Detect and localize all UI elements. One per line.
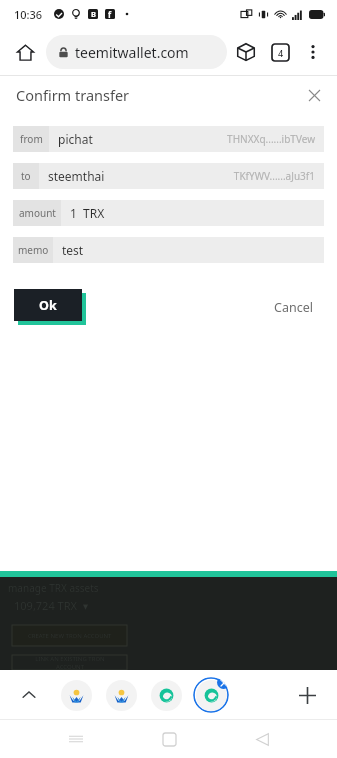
button[interactable]: Close — [299, 80, 329, 110]
button[interactable]: Home — [151, 721, 187, 757]
button[interactable]: Recent apps — [58, 721, 94, 757]
staticText: 1 TRX — [70, 205, 105, 221]
button[interactable]: from — [13, 126, 324, 152]
button[interactable]: Home — [8, 35, 42, 69]
staticText: from — [20, 132, 43, 146]
button[interactable]: LINK AN EXISTING TRON ACCOUNT — [12, 655, 127, 670]
staticText: TKfYWV......aJu3f1 — [233, 169, 315, 183]
button[interactable]: CREATE NEW TRON ACCOUNT — [12, 625, 127, 646]
staticText: pichat — [58, 131, 93, 147]
button[interactable]: Expand — [10, 676, 48, 714]
staticText: to — [21, 169, 31, 183]
button[interactable]: 3D view — [229, 35, 263, 69]
button[interactable]: More options — [297, 36, 329, 68]
button[interactable]: Current tab, close — [193, 677, 229, 713]
button[interactable]: New tab — [287, 675, 327, 715]
button[interactable]: Tab 2 — [103, 677, 139, 713]
staticText: CREATE NEW TRON ACCOUNT — [28, 632, 112, 640]
staticText: memo — [18, 243, 49, 257]
staticText: LINK AN EXISTING TRON ACCOUNT — [35, 655, 105, 670]
staticText: teemitwallet.com — [75, 43, 189, 62]
button[interactable]: to — [13, 163, 324, 189]
staticText: test — [62, 242, 84, 258]
staticText: manage TRX assets — [8, 581, 99, 595]
button[interactable]: teemitwallet.com — [46, 35, 227, 69]
button[interactable]: Cancel — [268, 295, 319, 320]
button[interactable]: Tabs: 4 — [263, 35, 297, 69]
button[interactable]: Ok — [14, 289, 82, 321]
button[interactable]: amount — [13, 200, 324, 226]
staticText: steemthai — [48, 168, 105, 184]
button[interactable]: Tab 3 — [148, 677, 184, 713]
staticText: 10:36 — [14, 7, 43, 22]
button[interactable]: Back — [244, 721, 280, 757]
staticText: B — [91, 9, 96, 19]
staticText: f — [108, 9, 112, 19]
staticText: 4 — [278, 47, 284, 59]
staticText: Confirm transfer — [16, 85, 130, 105]
button[interactable]: Tab 1 — [58, 677, 94, 713]
staticText: amount — [19, 206, 56, 220]
button[interactable]: memo — [13, 237, 324, 263]
staticText: Cancel — [274, 299, 313, 316]
staticText: Ok — [39, 297, 57, 314]
staticText: THNXXq......ibTVew — [227, 132, 315, 146]
staticText: 109,724 TRX ▾ — [14, 598, 89, 613]
